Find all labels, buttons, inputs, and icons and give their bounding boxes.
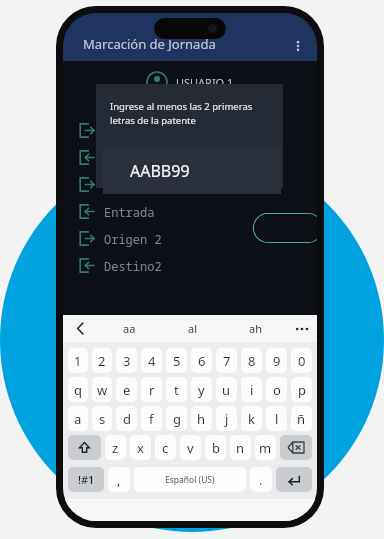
- button[interactable]: a: [68, 406, 88, 431]
- button[interactable]: Entrada: [63, 198, 317, 225]
- button[interactable]: s: [92, 406, 112, 431]
- button[interactable]: Origen 2: [63, 225, 317, 252]
- button[interactable]: Español (US): [134, 467, 246, 492]
- button[interactable]: Backspace: [280, 435, 312, 460]
- button[interactable]: 3: [116, 348, 137, 373]
- staticText: 9: [273, 352, 281, 370]
- button[interactable]: n: [230, 435, 251, 460]
- staticText: s: [99, 410, 106, 428]
- staticText: r: [149, 381, 155, 399]
- staticText: a: [74, 410, 82, 428]
- button[interactable]: h: [191, 406, 212, 431]
- button[interactable]: Back: [63, 315, 97, 342]
- button[interactable]: 1: [68, 348, 88, 373]
- staticText: v: [187, 439, 194, 457]
- staticText: Origen 2: [104, 231, 162, 247]
- button[interactable]: 7: [216, 348, 237, 373]
- staticText: 1: [74, 352, 82, 370]
- button[interactable]: j: [216, 406, 237, 431]
- button[interactable]: AABB99: [103, 147, 281, 194]
- staticText: Entrada: [104, 204, 155, 220]
- button[interactable]: 2: [92, 348, 112, 373]
- button[interactable]: Destino2: [63, 252, 317, 279]
- staticText: g: [173, 410, 181, 428]
- button[interactable]: 5: [166, 348, 187, 373]
- button[interactable]: y: [191, 377, 212, 402]
- button[interactable]: Listado: [63, 144, 317, 171]
- button[interactable]: k: [241, 406, 262, 431]
- button[interactable]: .: [250, 467, 272, 492]
- staticText: x: [137, 439, 144, 457]
- staticText: c: [162, 439, 169, 457]
- staticText: u: [222, 381, 231, 399]
- staticText: n: [236, 439, 245, 457]
- button[interactable]: x: [130, 435, 151, 460]
- button[interactable]: v: [180, 435, 201, 460]
- button[interactable]: More options: [285, 33, 311, 59]
- button[interactable]: z: [105, 435, 126, 460]
- button[interactable]: e: [116, 377, 137, 402]
- staticText: ñ: [297, 410, 306, 428]
- button[interactable]: c: [155, 435, 176, 460]
- button[interactable]: t: [166, 377, 187, 402]
- button[interactable]: 6: [191, 348, 212, 373]
- button[interactable]: o: [266, 377, 287, 402]
- button[interactable]: More suggestions: [287, 315, 317, 342]
- button[interactable]: Enter: [276, 467, 312, 492]
- button[interactable]: [253, 213, 317, 243]
- staticText: z: [112, 439, 119, 457]
- staticText: q: [74, 381, 82, 399]
- button[interactable]: Marcar: [63, 171, 317, 198]
- button[interactable]: q: [68, 377, 88, 402]
- staticText: m: [259, 439, 272, 457]
- button[interactable]: aa: [97, 315, 161, 342]
- button[interactable]: p: [291, 377, 312, 402]
- button[interactable]: u: [216, 377, 237, 402]
- staticText: 2: [98, 352, 106, 370]
- button[interactable]: m: [255, 435, 276, 460]
- button[interactable]: 4: [141, 348, 162, 373]
- button[interactable]: !#1: [68, 467, 104, 492]
- staticText: ah: [249, 321, 262, 336]
- button[interactable]: 9: [266, 348, 287, 373]
- staticText: b: [212, 439, 220, 457]
- staticText: j: [225, 410, 229, 428]
- button[interactable]: d: [116, 406, 137, 431]
- staticText: Listado: [104, 150, 155, 166]
- button[interactable]: Recargas: [63, 117, 317, 144]
- button[interactable]: al: [161, 315, 224, 342]
- button[interactable]: b: [205, 435, 226, 460]
- button[interactable]: w: [92, 377, 112, 402]
- button[interactable]: f: [141, 406, 162, 431]
- staticText: 4: [148, 352, 156, 370]
- staticText: f: [149, 410, 154, 428]
- button[interactable]: 0: [291, 348, 312, 373]
- button[interactable]: l: [266, 406, 287, 431]
- staticText: aa: [123, 321, 136, 336]
- button[interactable]: ah: [224, 315, 287, 342]
- button[interactable]: 8: [241, 348, 262, 373]
- button[interactable]: i: [241, 377, 262, 402]
- button[interactable]: r: [141, 377, 162, 402]
- staticText: 6: [198, 352, 206, 370]
- staticText: 7: [223, 352, 231, 370]
- staticText: d: [123, 410, 131, 428]
- staticText: e: [123, 381, 131, 399]
- staticText: t: [174, 381, 179, 399]
- staticText: p: [298, 381, 306, 399]
- button[interactable]: g: [166, 406, 187, 431]
- staticText: al: [188, 321, 198, 336]
- staticText: Español (US): [165, 474, 215, 486]
- staticText: .: [259, 471, 263, 489]
- staticText: Destino2: [104, 258, 162, 274]
- staticText: y: [198, 381, 205, 399]
- button[interactable]: ñ: [291, 406, 312, 431]
- staticText: 8: [248, 352, 256, 370]
- staticText: !#1: [78, 472, 95, 487]
- button[interactable]: Shift: [68, 435, 101, 460]
- staticText: i: [250, 381, 254, 399]
- staticText: h: [197, 410, 206, 428]
- button[interactable]: USUARIO 1: [63, 71, 317, 93]
- button[interactable]: ,: [108, 467, 130, 492]
